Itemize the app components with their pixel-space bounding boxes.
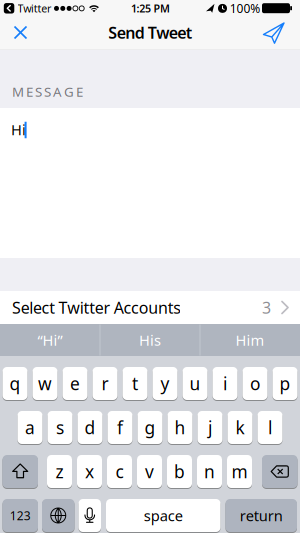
staticText: l [268,416,272,439]
button[interactable]: u [182,367,207,400]
staticText: j [208,416,212,439]
button[interactable]: c [107,455,132,488]
button[interactable]: g [137,411,162,444]
button[interactable]: His [101,324,199,356]
staticText: Select Twitter Accounts [12,297,181,318]
staticText: e [70,372,80,395]
staticText: a [25,416,35,439]
staticText: b [174,460,185,483]
staticText: m [231,460,247,483]
staticText: g [144,416,155,439]
staticText: Him [235,330,264,350]
button[interactable]: q [2,367,27,400]
button[interactable]: Select Twitter Accounts [0,291,300,324]
staticText: 100% [230,0,260,16]
staticText: p [279,372,290,395]
staticText: Hi [11,120,26,139]
staticText: r [101,372,108,395]
button[interactable]: Shift [2,455,38,488]
staticText: d [84,416,95,439]
button[interactable]: d [77,411,102,444]
button[interactable]: x [77,455,102,488]
button[interactable]: l [257,411,282,444]
button[interactable]: b [167,455,192,488]
button[interactable]: Dictate [78,499,101,532]
button[interactable]: w [32,367,57,400]
staticText: n [204,460,215,483]
staticText: x [85,460,94,483]
staticText: y [160,372,169,395]
button[interactable]: Return to Twitter [0,0,56,16]
button[interactable]: Cancel [3,15,37,49]
button[interactable]: s [47,411,72,444]
staticText: “Hi” [37,330,62,350]
staticText: k [235,416,244,439]
staticText: space [144,506,183,525]
staticText: s [56,416,64,439]
staticText: M E S S A G E [12,83,83,100]
button[interactable]: n [197,455,222,488]
staticText: o [250,372,260,395]
staticText: His [139,330,161,350]
button[interactable]: “Hi” [1,324,99,356]
button[interactable]: o [242,367,267,400]
staticText: f [117,416,123,439]
button[interactable]: Send [257,15,291,49]
button[interactable]: i [212,367,237,400]
button[interactable]: e [62,367,87,400]
staticText: return [240,506,283,525]
button[interactable]: space [106,499,220,532]
staticText: u [189,372,200,395]
button[interactable]: k [227,411,252,444]
staticText: h [174,416,185,439]
button[interactable]: f [107,411,132,444]
staticText: i [223,372,227,395]
staticText: c [115,460,123,483]
staticText: q [9,372,20,395]
button[interactable]: Delete [262,455,297,488]
button[interactable]: h [167,411,192,444]
button[interactable]: j [197,411,222,444]
staticText: Twitter [17,1,51,15]
button[interactable]: a [17,411,42,444]
staticText: 3 [262,297,271,318]
button[interactable]: Him [201,324,299,356]
staticText: v [145,460,154,483]
button[interactable]: t [122,367,147,400]
staticText: 123 [10,507,31,523]
button[interactable]: m [227,455,252,488]
button[interactable]: return [225,499,297,532]
button[interactable]: p [272,367,297,400]
button[interactable]: z [47,455,72,488]
staticText: z [55,460,63,483]
button[interactable]: r [92,367,117,400]
staticText: 1:25 PM [131,1,170,15]
button[interactable]: y [152,367,177,400]
staticText: w [38,372,52,395]
button[interactable]: v [137,455,162,488]
button[interactable]: Next keyboard [42,499,74,532]
staticText: Send Tweet [108,22,192,43]
button[interactable]: 123 [2,499,38,532]
staticText: t [132,372,138,395]
